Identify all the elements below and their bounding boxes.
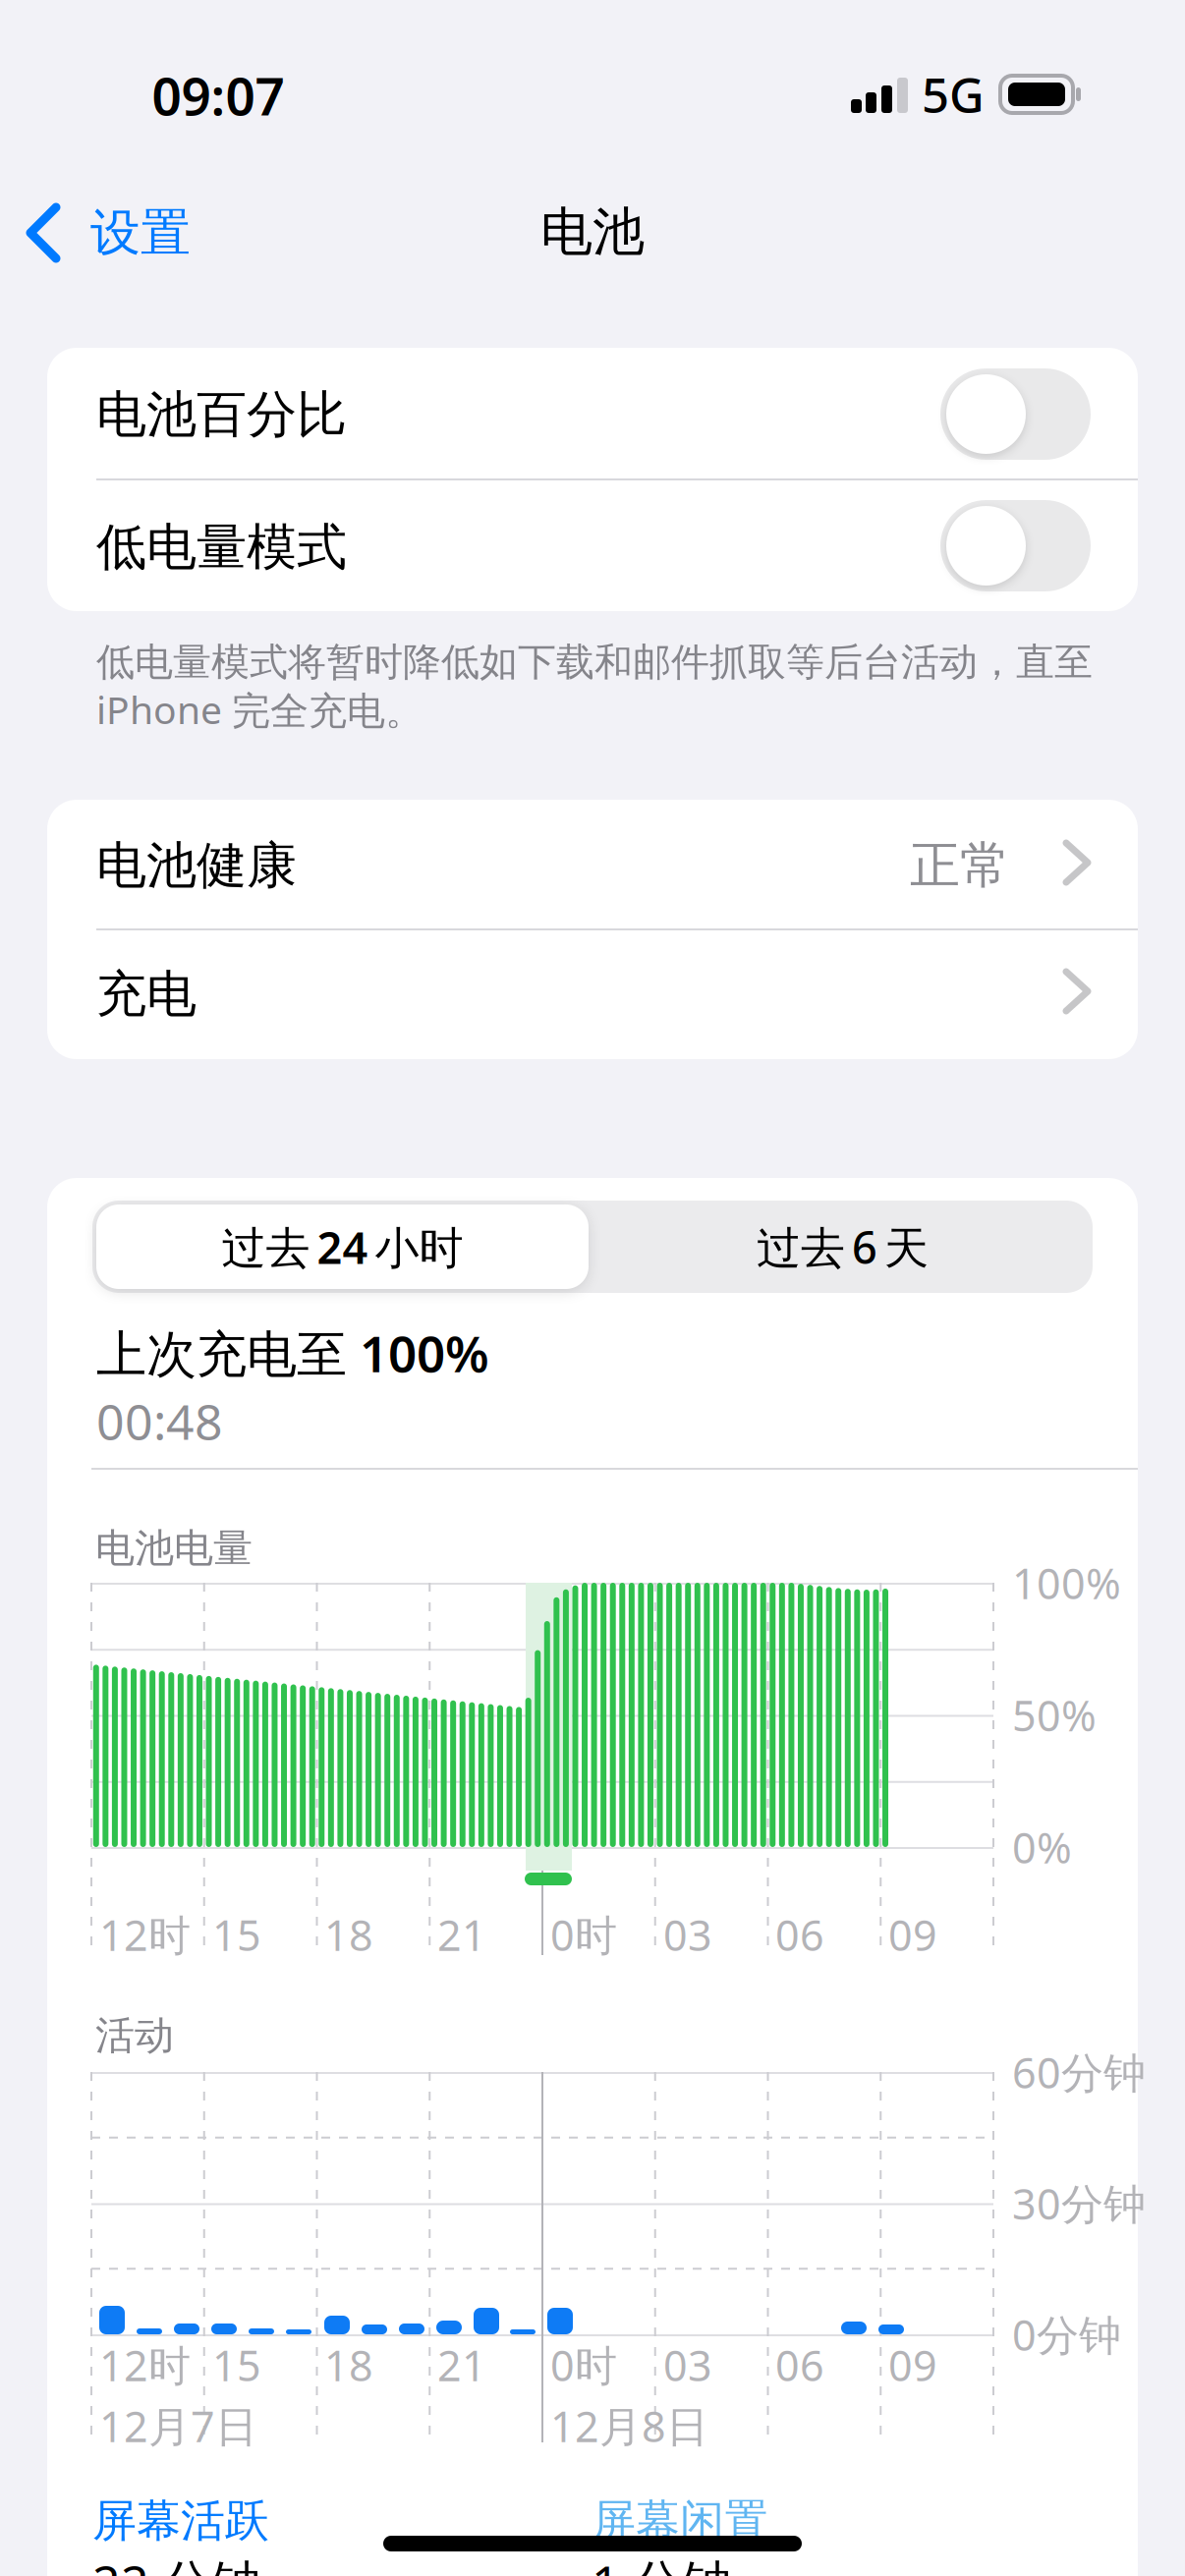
- staticText: 12时: [99, 1906, 191, 1963]
- staticText: 09: [888, 2336, 937, 2394]
- staticText: 00:48: [96, 1387, 223, 1454]
- staticText: 1 分钟: [592, 2548, 731, 2576]
- button[interactable]: 电池百分比: [47, 348, 1138, 479]
- staticText: 06: [775, 1906, 824, 1963]
- staticText: 低电量模式将暂时降低如下载和邮件抓取等后台活动，直至: [96, 638, 1093, 686]
- staticText: 低电量模式: [96, 516, 347, 579]
- staticText: 18: [324, 1906, 373, 1963]
- staticText: 电池: [540, 199, 645, 265]
- staticText: 21: [437, 1906, 486, 1963]
- staticText: 电池健康: [96, 834, 297, 897]
- button[interactable]: 过去 6 天: [592, 1204, 1093, 1289]
- staticText: 50%: [1012, 1686, 1097, 1744]
- staticText: 电池百分比: [96, 383, 347, 446]
- staticText: 18: [324, 2336, 373, 2394]
- staticText: 12月8日: [550, 2397, 708, 2454]
- staticText: 09: [888, 1906, 937, 1963]
- button[interactable]: 电池健康: [47, 800, 1138, 929]
- staticText: iPhone 完全充电。: [96, 683, 423, 736]
- staticText: 22 分钟: [92, 2548, 260, 2576]
- staticText: 屏幕闲置: [592, 2493, 768, 2549]
- staticText: 03: [663, 1906, 712, 1963]
- staticText: 12时: [99, 2336, 191, 2394]
- staticText: 30分钟: [1012, 2174, 1146, 2232]
- staticText: 过去 6 天: [757, 1217, 929, 1277]
- staticText: 0时: [550, 2336, 617, 2394]
- staticText: 03: [663, 2336, 712, 2394]
- staticText: 0分钟: [1012, 2306, 1121, 2363]
- staticText: 15: [212, 1906, 261, 1963]
- staticText: 5G: [922, 62, 985, 127]
- staticText: 充电: [96, 963, 197, 1026]
- staticText: 屏幕活跃: [92, 2493, 269, 2549]
- staticText: 过去 24 小时: [222, 1217, 463, 1277]
- button[interactable]: 过去 24 小时: [96, 1204, 589, 1289]
- button[interactable]: 充电: [47, 929, 1138, 1059]
- staticText: 活动: [95, 2011, 174, 2060]
- staticText: 12月7日: [99, 2397, 257, 2454]
- staticText: 上次充电至 100%: [96, 1319, 489, 1387]
- button[interactable]: 返回设置: [22, 201, 191, 264]
- staticText: 09:07: [152, 60, 284, 131]
- button[interactable]: 低电量模式: [47, 480, 1138, 611]
- staticText: 0%: [1012, 1818, 1072, 1876]
- staticText: 设置: [90, 201, 191, 264]
- staticText: 正常: [910, 834, 1010, 897]
- staticText: 0时: [550, 1906, 617, 1963]
- staticText: 06: [775, 2336, 824, 2394]
- staticText: 100%: [1012, 1554, 1121, 1612]
- staticText: 15: [212, 2336, 261, 2394]
- staticText: 电池电量: [95, 1524, 253, 1573]
- staticText: 60分钟: [1012, 2043, 1146, 2101]
- staticText: 21: [437, 2336, 486, 2394]
